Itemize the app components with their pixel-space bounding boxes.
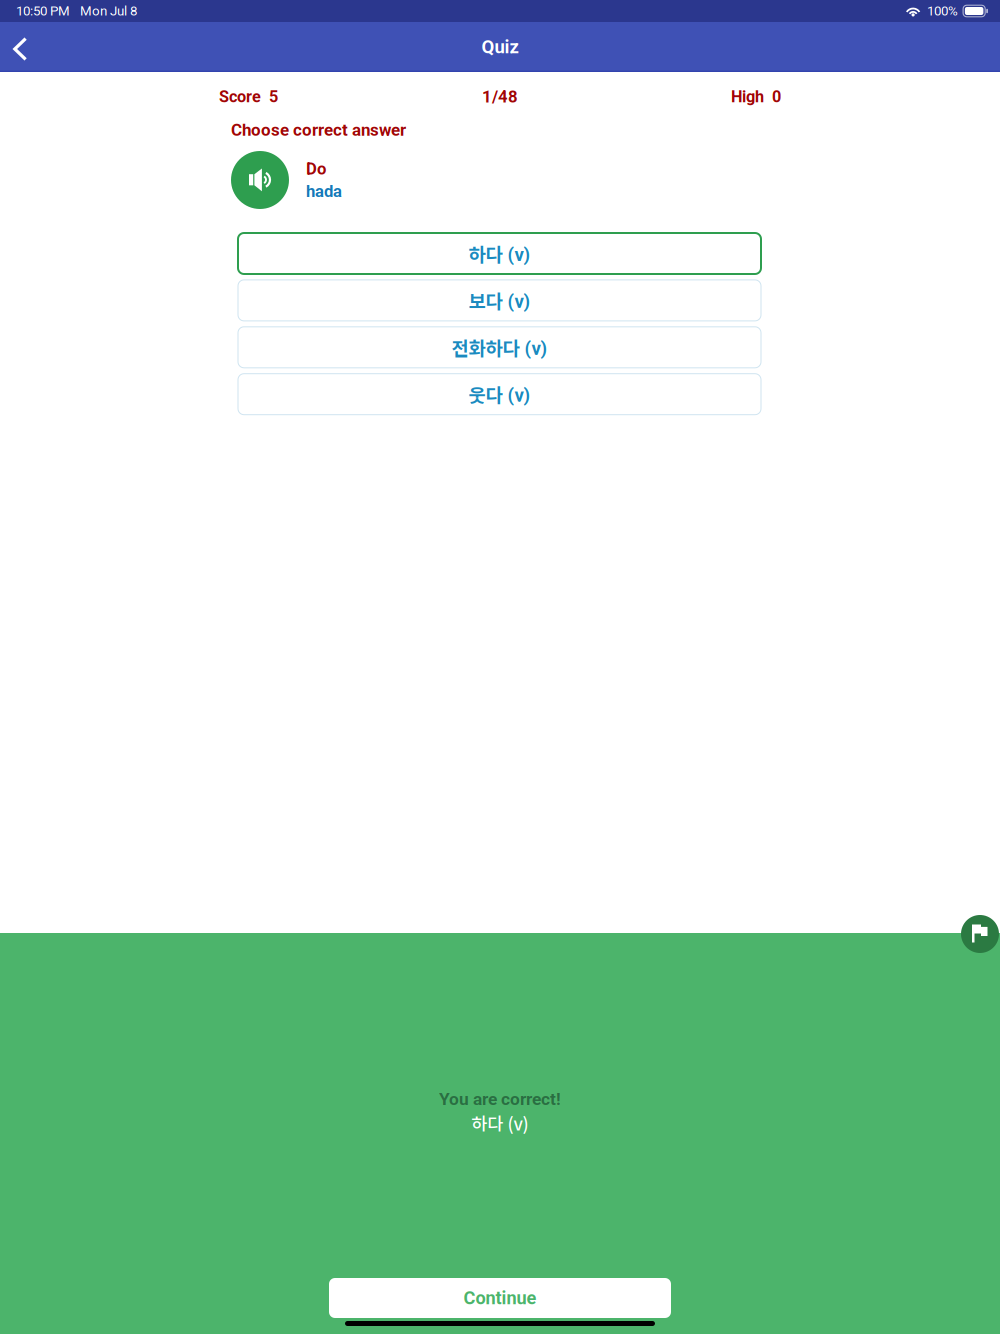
staticText: 보다 (v) <box>468 287 530 314</box>
staticText: Mon Jul 8 <box>80 3 137 19</box>
staticText: You are correct! <box>439 1089 561 1109</box>
staticText: Do <box>306 159 326 178</box>
staticText: Score 5 <box>219 87 278 106</box>
button[interactable]: 보다 (v) <box>238 280 761 321</box>
staticText: Quiz <box>481 36 518 58</box>
button[interactable]: Continue <box>329 1278 671 1318</box>
staticText: 하다 (v) <box>468 240 530 267</box>
staticText: Continue <box>463 1287 536 1309</box>
staticText: 하다 (v) <box>471 1110 528 1135</box>
button[interactable]: 전화하다 (v) <box>238 327 761 368</box>
staticText: hada <box>306 181 342 201</box>
staticText: 웃다 (v) <box>468 381 530 407</box>
staticText: 10:50 PM <box>16 3 70 19</box>
button[interactable]: Back <box>0 25 44 69</box>
button[interactable]: Report problem <box>961 915 999 953</box>
staticText: 전화하다 (v) <box>451 334 547 360</box>
staticText: High 0 <box>731 87 781 106</box>
staticText: 1/48 <box>482 87 518 106</box>
button[interactable]: 웃다 (v) <box>238 374 761 415</box>
button[interactable]: 하다 (v) <box>238 233 761 274</box>
button[interactable]: Play pronunciation <box>231 151 289 209</box>
staticText: 100% <box>927 3 958 19</box>
staticText: Choose correct answer <box>231 120 406 140</box>
